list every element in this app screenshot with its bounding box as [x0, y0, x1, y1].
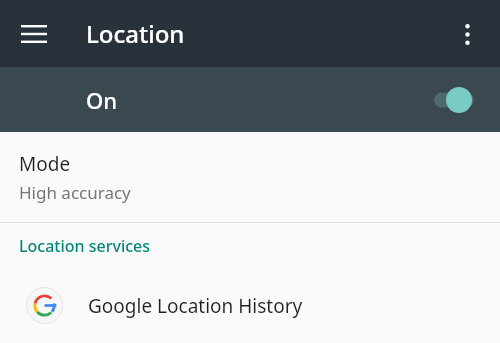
- staticText: Google Location History: [88, 293, 303, 319]
- staticText: Location: [86, 17, 185, 50]
- staticText: Mode: [19, 151, 71, 177]
- staticText: Location services: [19, 235, 151, 257]
- button[interactable]: More options: [443, 10, 491, 58]
- staticText: High accuracy: [19, 181, 131, 204]
- button[interactable]: On: [0, 67, 500, 132]
- button[interactable]: Mode: [0, 132, 500, 222]
- other: Location switch, on: [433, 83, 489, 117]
- button[interactable]: Open navigation menu: [10, 10, 58, 58]
- button[interactable]: Google Location History: [0, 268, 500, 343]
- staticText: On: [86, 85, 118, 115]
